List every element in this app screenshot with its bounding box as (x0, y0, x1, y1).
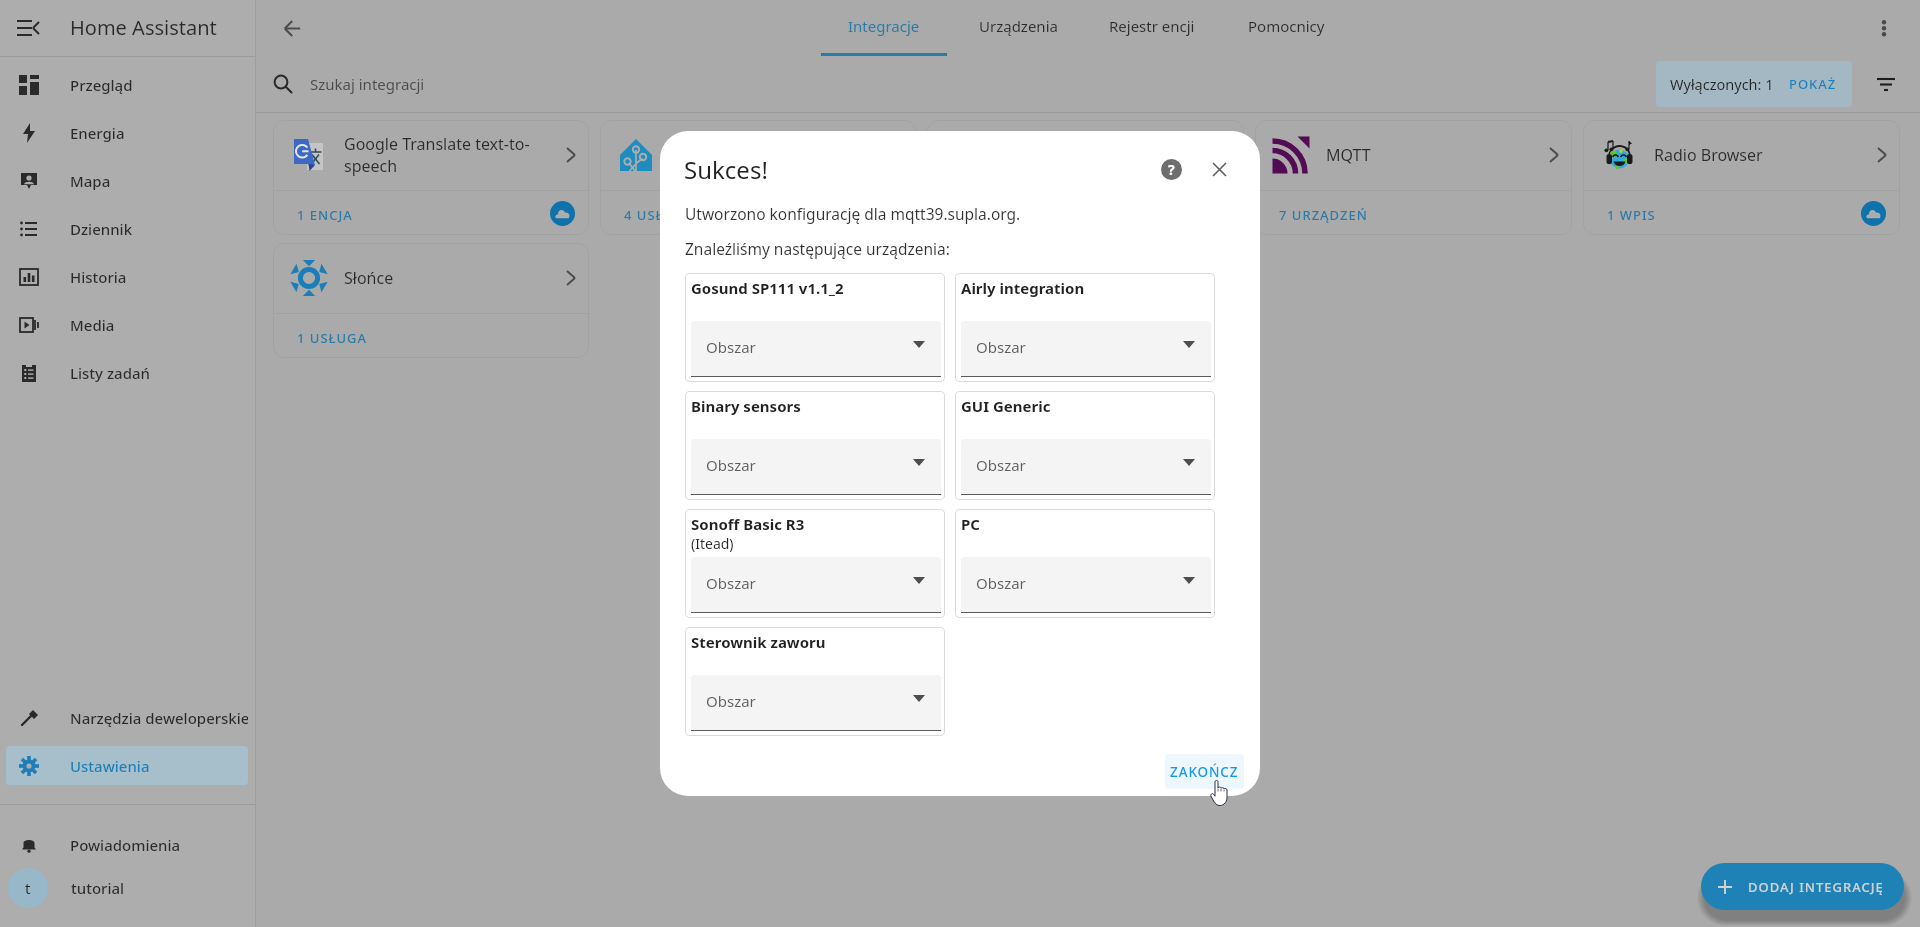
staticText: Sonoff Basic R3 (691, 514, 805, 534)
button[interactable]: Media (6, 305, 248, 344)
staticText: 1 USŁUGA (297, 329, 367, 347)
button[interactable]: Listy zadań (6, 353, 248, 392)
staticText: Znaleźliśmy następujące urządzenia: (685, 238, 950, 259)
staticText: Szukaj integracji (310, 74, 425, 94)
staticText: Dziennik (70, 219, 133, 239)
staticText: Obszar (706, 573, 756, 593)
staticText (998, 144, 1216, 166)
button[interactable]: Integracje (817, 0, 951, 56)
staticText: Utworzono konfigurację dla mqtt39.supla.… (685, 203, 1021, 224)
staticText: Gosund SP111 v1.1_2 (691, 278, 844, 298)
staticText: Mapa (70, 171, 111, 191)
staticText: DODAJ INTEGRACJĘ (1748, 878, 1884, 896)
button[interactable]: ZAKOŃCZ (1165, 754, 1244, 789)
button[interactable]: Historia (6, 257, 248, 296)
button[interactable]: Help (1147, 145, 1195, 193)
button[interactable]: Mapa (6, 161, 248, 200)
staticText: GUI Generic (961, 396, 1051, 416)
staticText: Sukces! (684, 153, 768, 186)
button[interactable]: Obszar (961, 439, 1211, 495)
staticText: tutorial (71, 878, 125, 898)
button[interactable]: Urządzenia (951, 0, 1085, 56)
button[interactable] (927, 120, 1244, 235)
button[interactable]: Toggle sidebar (0, 0, 56, 56)
staticText: 7 URZĄDZEŃ (1279, 206, 1368, 224)
button[interactable]: Narzędzia deweloperskie (6, 698, 248, 737)
staticText: 4 USŁUGI (624, 206, 691, 224)
staticText: MQTT (1326, 144, 1544, 166)
staticText: Sterownik zaworu (691, 632, 826, 652)
staticText: Home Assistant (70, 14, 217, 41)
staticText: Ustawienia (70, 756, 150, 776)
button[interactable]: Obszar (691, 557, 941, 613)
button[interactable]: Obszar (691, 321, 941, 377)
staticText: Rejestr encji (1109, 16, 1195, 36)
staticText: Home Assistant (671, 144, 888, 166)
staticText: ZAKOŃCZ (1170, 763, 1239, 781)
staticText: Media (70, 315, 115, 335)
staticText: Obszar (976, 455, 1026, 475)
staticText: t (25, 878, 31, 898)
staticText: Obszar (976, 573, 1026, 593)
staticText: Obszar (706, 337, 756, 357)
staticText: Listy zadań (70, 363, 150, 383)
button[interactable]: Przegląd (6, 65, 248, 104)
button[interactable]: Słońce (273, 243, 589, 358)
staticText: Binary sensors (691, 396, 801, 416)
button[interactable]: Dziennik (6, 209, 248, 248)
staticText: Airly integration (961, 278, 1085, 298)
staticText: Powiadomienia (70, 835, 181, 855)
button[interactable]: Obszar (691, 675, 941, 731)
button[interactable]: More options (1848, 0, 1920, 56)
staticText: Pomocnicy (1248, 16, 1325, 36)
staticText: Integracje (848, 16, 920, 36)
staticText: Obszar (976, 337, 1026, 357)
button[interactable]: Rejestr encji (1085, 0, 1219, 56)
staticText: 1 ENCJA (297, 206, 353, 224)
button[interactable]: Back (256, 0, 328, 56)
button[interactable]: Filter (1852, 56, 1920, 112)
staticText: Energia (70, 123, 125, 143)
button[interactable]: Obszar (961, 321, 1211, 377)
staticText: ? (1168, 160, 1175, 179)
staticText: Historia (70, 267, 127, 287)
staticText: Urządzenia (979, 16, 1058, 36)
button[interactable]: Obszar (691, 439, 941, 495)
button[interactable]: DODAJ INTEGRACJĘ (1701, 863, 1904, 910)
staticText: Przegląd (70, 75, 133, 95)
staticText: 1 WPIS (1607, 206, 1656, 224)
button[interactable]: Home Assistant (600, 120, 916, 235)
button[interactable]: Ustawienia (6, 746, 248, 785)
staticText: Wyłączonych: 1 (1670, 74, 1774, 94)
staticText: PC (961, 514, 980, 534)
staticText: POKAŻ (1789, 75, 1837, 93)
staticText: (Itead) (691, 534, 734, 553)
staticText: Obszar (706, 691, 756, 711)
button[interactable]: Radio Browser (1583, 120, 1900, 235)
button[interactable]: Wyłączonych: 1 (1656, 61, 1852, 107)
staticText: Słońce (344, 267, 561, 289)
staticText: Google Translate text-to- speech (344, 133, 561, 177)
staticText: Narzędzia deweloperskie (70, 708, 248, 728)
button[interactable]: Close (1195, 145, 1243, 193)
button[interactable]: Pomocnicy (1219, 0, 1353, 56)
button[interactable]: Energia (6, 113, 248, 152)
button[interactable]: MQTT (1255, 120, 1572, 235)
button[interactable]: Obszar (961, 557, 1211, 613)
staticText: Obszar (706, 455, 756, 475)
staticText: Radio Browser (1654, 144, 1872, 166)
button[interactable]: t (0, 864, 255, 912)
button[interactable]: Powiadomienia (6, 825, 248, 864)
button[interactable]: Google Translate text-to- speech (273, 120, 589, 235)
